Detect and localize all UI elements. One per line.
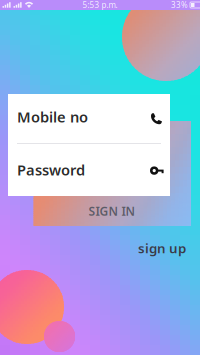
- staticText: SIGN IN: [88, 203, 135, 219]
- staticText: sign up: [138, 239, 186, 257]
- staticText: 5:53 p.m.: [82, 0, 117, 10]
- button[interactable]: SIGN IN: [34, 196, 190, 226]
- staticText: Mobile no: [17, 107, 88, 126]
- staticText: Password: [17, 160, 85, 179]
- staticText: 33%: [171, 0, 188, 10]
- button[interactable]: sign up: [136, 240, 188, 256]
